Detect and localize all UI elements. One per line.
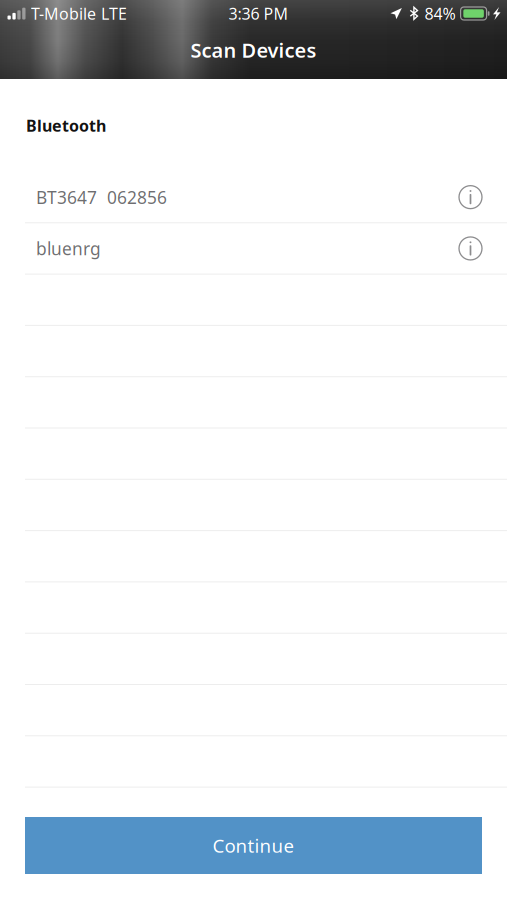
staticText: bluenrg: [36, 237, 101, 260]
staticText: BT3647 062856: [36, 186, 167, 209]
button[interactable]: BT3647 062856: [0, 172, 507, 223]
staticText: Scan Devices: [190, 37, 316, 63]
staticText: Continue: [212, 833, 294, 858]
button[interactable]: Continue: [25, 817, 482, 874]
staticText: LTE: [101, 3, 127, 24]
staticText: 84%: [425, 3, 456, 24]
staticText: T-Mobile: [31, 3, 96, 24]
staticText: 3:36 PM: [228, 3, 288, 24]
staticText: Bluetooth: [26, 115, 106, 136]
button[interactable]: bluenrg: [0, 223, 507, 275]
